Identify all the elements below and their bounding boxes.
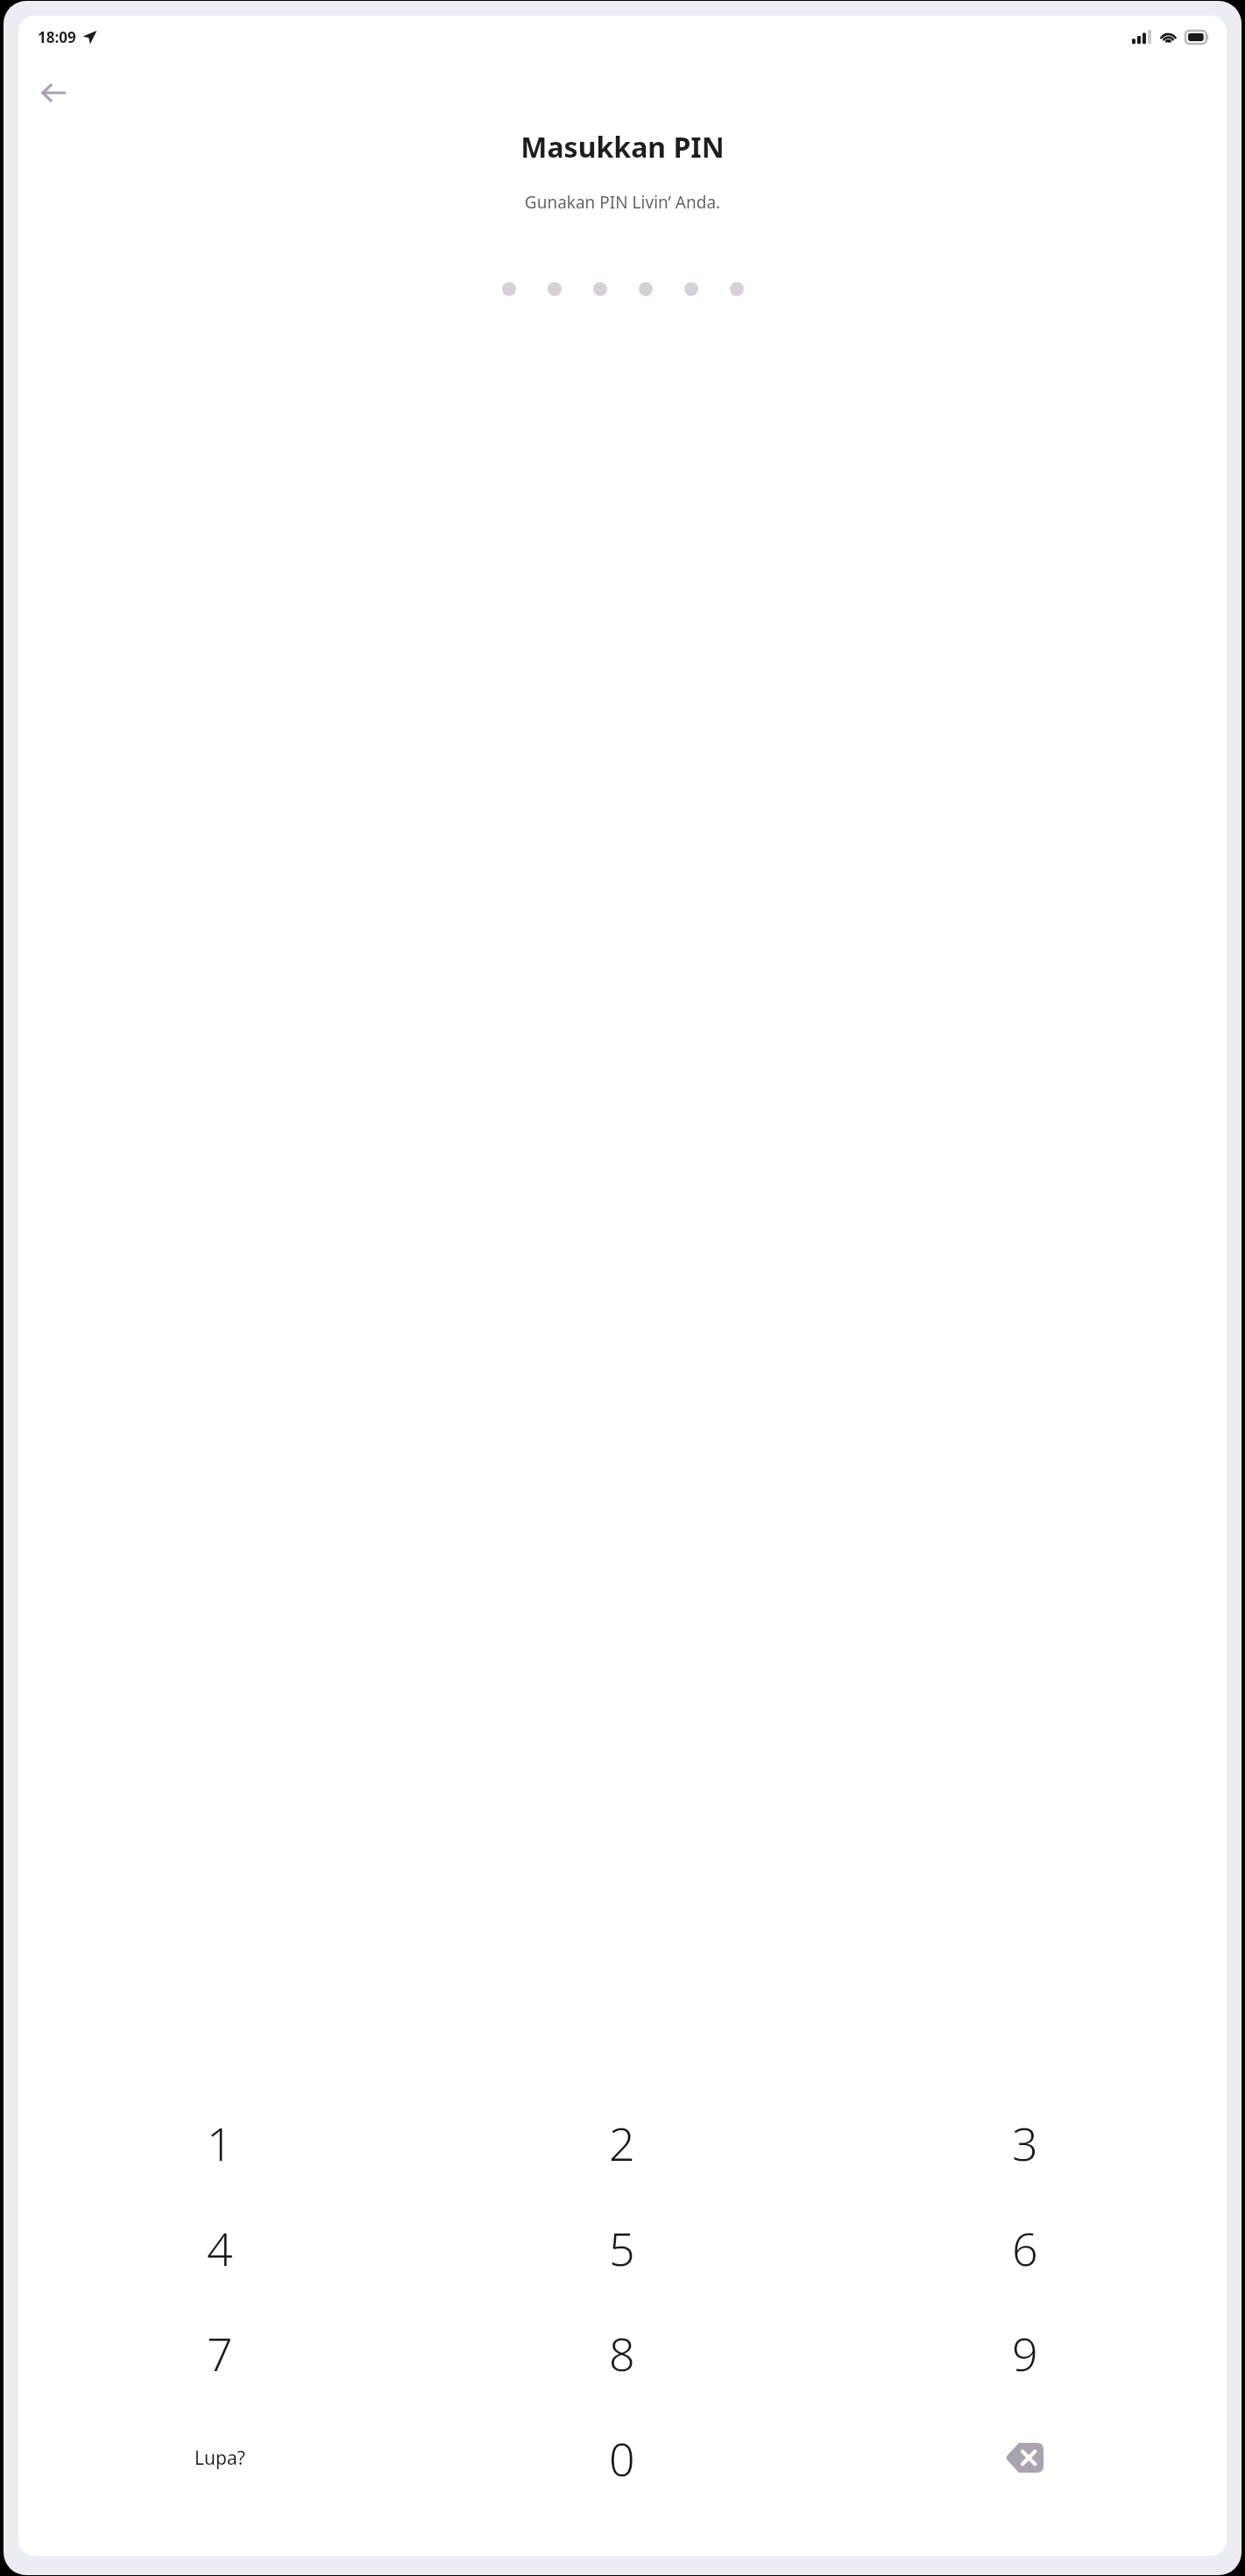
staticText: 18:09 xyxy=(38,27,76,47)
staticText: 0 xyxy=(609,2427,635,2489)
button[interactable]: 9 xyxy=(824,2311,1227,2395)
button[interactable]: 4 xyxy=(18,2205,421,2290)
button[interactable]: 8 xyxy=(421,2311,824,2395)
staticText: Masukkan PIN xyxy=(18,128,1227,166)
button[interactable]: 2 xyxy=(421,2100,824,2184)
staticText: 7 xyxy=(207,2322,233,2384)
button[interactable]: 5 xyxy=(421,2205,824,2290)
button[interactable]: 6 xyxy=(824,2205,1227,2290)
staticText: 1 xyxy=(207,2112,233,2174)
staticText: 9 xyxy=(1012,2322,1038,2384)
staticText: 6 xyxy=(1012,2217,1038,2279)
staticText: 4 xyxy=(207,2217,233,2279)
button[interactable]: 7 xyxy=(18,2311,421,2395)
staticText: 8 xyxy=(609,2322,635,2384)
staticText: 3 xyxy=(1012,2112,1038,2174)
staticText: Lupa? xyxy=(195,2445,245,2471)
staticText: 2 xyxy=(609,2112,635,2174)
button[interactable]: Lupa? xyxy=(18,2416,421,2500)
staticText: 5 xyxy=(609,2217,635,2279)
button[interactable]: Back xyxy=(31,70,76,116)
button[interactable]: 1 xyxy=(18,2100,421,2184)
staticText: Gunakan PIN Livin’ Anda. xyxy=(18,191,1227,214)
button[interactable]: 3 xyxy=(824,2100,1227,2184)
button[interactable]: 0 xyxy=(421,2416,824,2500)
button[interactable]: Backspace xyxy=(824,2416,1227,2500)
